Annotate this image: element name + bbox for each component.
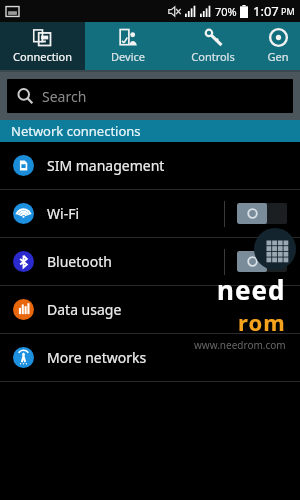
staticText: Network connections	[11, 122, 141, 140]
staticText: Gen	[267, 49, 289, 64]
button[interactable]: Data usage	[0, 286, 300, 333]
staticText: Data usage	[47, 300, 122, 319]
staticText: Controls	[191, 49, 235, 64]
button[interactable]: Search	[7, 79, 293, 113]
staticText: Wi-Fi	[47, 204, 80, 223]
button[interactable]: Wi-Fi toggle	[237, 203, 287, 224]
staticText: 70%	[215, 4, 237, 19]
button[interactable]: Bluetooth	[0, 238, 300, 285]
button[interactable]: SIM management	[0, 142, 300, 189]
staticText: need	[217, 272, 286, 307]
button[interactable]: Connection	[0, 22, 85, 70]
staticText: www.needrom.com	[194, 338, 286, 352]
staticText: Device	[111, 49, 145, 64]
button[interactable]: Controls	[170, 22, 255, 70]
staticText: Bluetooth	[47, 252, 112, 271]
staticText: Search	[42, 87, 87, 106]
button[interactable]: Multi window tray	[254, 228, 296, 270]
staticText: More networks	[47, 348, 147, 367]
staticText: 1:07	[253, 2, 279, 20]
staticText: PM	[281, 5, 295, 17]
button[interactable]: Wi-Fi	[0, 190, 300, 237]
button[interactable]: Bluetooth toggle	[237, 251, 287, 272]
staticText: Connection	[13, 49, 72, 64]
button[interactable]: More networks	[0, 334, 300, 381]
staticText: rom	[238, 307, 286, 337]
staticText: SIM management	[47, 156, 165, 175]
button[interactable]: Gen	[255, 22, 300, 70]
button[interactable]: Device	[85, 22, 170, 70]
